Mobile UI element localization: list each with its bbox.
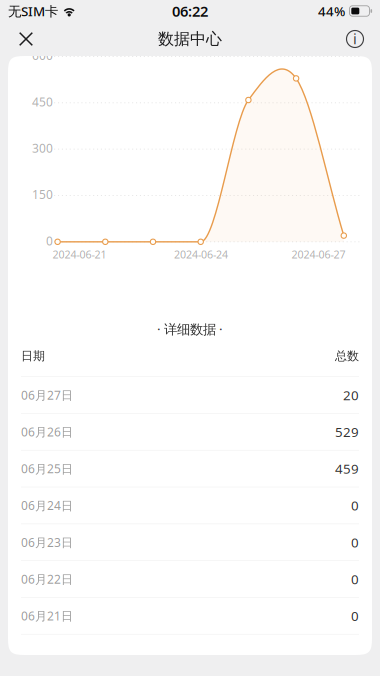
staticText: 无SIM卡	[8, 2, 58, 20]
staticText: 300	[32, 140, 53, 156]
staticText: 0	[46, 233, 53, 249]
staticText: · 详细数据 ·	[157, 320, 223, 338]
staticText: 06:22	[172, 1, 208, 21]
staticText: 2024-06-21	[52, 247, 106, 261]
staticText: 44%	[318, 2, 345, 20]
button[interactable]: 说明	[333, 22, 377, 56]
staticText: 459	[335, 460, 359, 477]
staticText: 529	[335, 423, 359, 441]
staticText: 0	[351, 497, 359, 514]
staticText: 数据中心	[158, 29, 222, 49]
staticText: 日期	[21, 349, 45, 363]
staticText: 0	[351, 570, 359, 588]
staticText: 150	[32, 186, 53, 202]
staticText: 06月24日	[21, 497, 73, 513]
staticText: i	[353, 29, 357, 48]
staticText: 2024-06-24	[174, 247, 228, 261]
button[interactable]: 关闭	[4, 22, 48, 56]
staticText: 06月22日	[21, 571, 73, 587]
staticText: 06月21日	[21, 608, 73, 624]
staticText: 600	[32, 47, 53, 63]
staticText: 06月23日	[21, 534, 73, 550]
staticText: 20	[343, 386, 359, 404]
staticText: 06月27日	[21, 387, 73, 403]
staticText: 0	[351, 533, 359, 551]
staticText: 2024-06-27	[291, 247, 345, 261]
staticText: 450	[32, 94, 53, 110]
staticText: 06月26日	[21, 424, 73, 440]
staticText: 0	[351, 607, 359, 625]
staticText: 总数	[335, 349, 359, 363]
staticText: 06月25日	[21, 461, 73, 477]
